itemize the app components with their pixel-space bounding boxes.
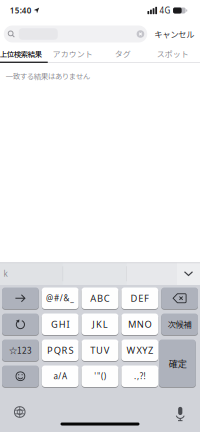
button[interactable]: GHI bbox=[42, 313, 79, 335]
button[interactable]: k bbox=[0, 262, 63, 285]
button[interactable]: WXYZ bbox=[121, 339, 158, 361]
button[interactable]: '"() bbox=[82, 365, 118, 387]
button[interactable] bbox=[2, 313, 39, 335]
staticText: PQRS bbox=[47, 344, 73, 356]
staticText: アカウント bbox=[53, 48, 93, 59]
button[interactable]: PQRS bbox=[42, 339, 79, 361]
button[interactable]: DEF bbox=[121, 287, 158, 309]
button[interactable]: MNO bbox=[121, 313, 158, 335]
staticText: 一致する結果はありません bbox=[6, 70, 90, 81]
staticText: スポット bbox=[157, 48, 189, 59]
button[interactable]: JKL bbox=[82, 313, 118, 335]
button[interactable] bbox=[177, 262, 200, 285]
staticText: 4G bbox=[160, 5, 171, 16]
staticText: TUV bbox=[90, 344, 110, 356]
button[interactable]: キャンセル bbox=[147, 28, 194, 40]
button[interactable] bbox=[2, 287, 39, 309]
button[interactable]: ☆123 bbox=[2, 339, 39, 361]
staticText: MNO bbox=[128, 318, 152, 330]
staticText: 確定 bbox=[168, 357, 186, 370]
button[interactable]: .,?! bbox=[121, 365, 158, 387]
button[interactable]: 次候補 bbox=[161, 313, 198, 335]
staticText: a/A bbox=[53, 371, 67, 381]
button[interactable]: タグ bbox=[98, 48, 148, 59]
button[interactable]: @#/&_ bbox=[42, 287, 79, 309]
staticText: 15:40 bbox=[10, 5, 32, 16]
staticText: 上位検索結果 bbox=[0, 48, 42, 59]
button[interactable] bbox=[0, 405, 25, 417]
staticText: GHI bbox=[51, 318, 69, 330]
staticText: タグ bbox=[115, 48, 131, 59]
button[interactable]: ABC bbox=[82, 287, 118, 309]
staticText: '"() bbox=[94, 371, 106, 381]
button[interactable]: 確定 bbox=[159, 339, 196, 387]
button[interactable] bbox=[161, 287, 198, 309]
staticText: ABC bbox=[90, 292, 110, 304]
staticText: キャンセル bbox=[154, 28, 194, 40]
staticText: DEF bbox=[130, 292, 149, 304]
staticText: @#/&_ bbox=[46, 293, 74, 303]
button[interactable] bbox=[2, 365, 39, 387]
button[interactable] bbox=[4, 25, 147, 42]
button[interactable]: スポット bbox=[148, 48, 198, 59]
staticText: 次候補 bbox=[168, 318, 192, 330]
staticText: .,?! bbox=[134, 371, 145, 381]
button[interactable]: アカウント bbox=[48, 48, 98, 59]
button[interactable]: a/A bbox=[42, 365, 79, 387]
button[interactable] bbox=[137, 30, 144, 38]
button[interactable]: 上位検索結果 bbox=[0, 48, 48, 59]
staticText: ☆123 bbox=[9, 344, 32, 356]
staticText: k bbox=[3, 268, 7, 279]
staticText: WXYZ bbox=[127, 344, 153, 356]
button[interactable] bbox=[175, 404, 200, 418]
button[interactable]: TUV bbox=[82, 339, 118, 361]
staticText: JKL bbox=[92, 318, 108, 330]
